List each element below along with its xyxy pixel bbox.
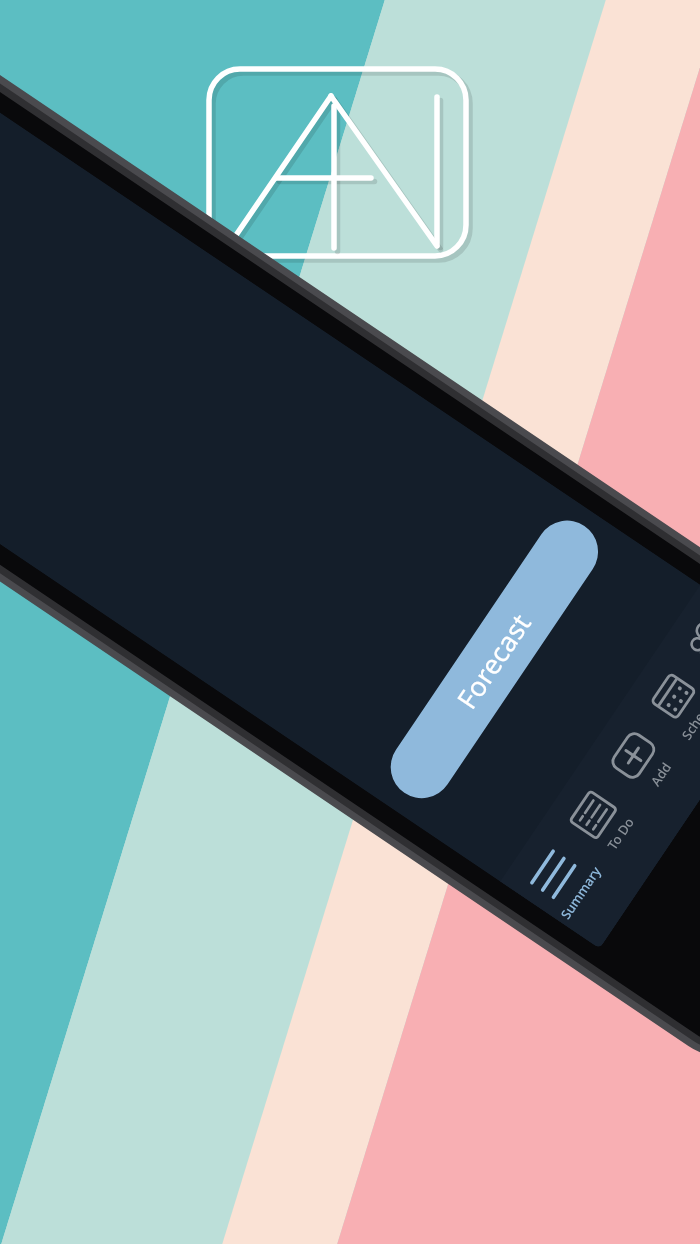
button[interactable]: App store promotional screen (0, 0, 700, 1244)
